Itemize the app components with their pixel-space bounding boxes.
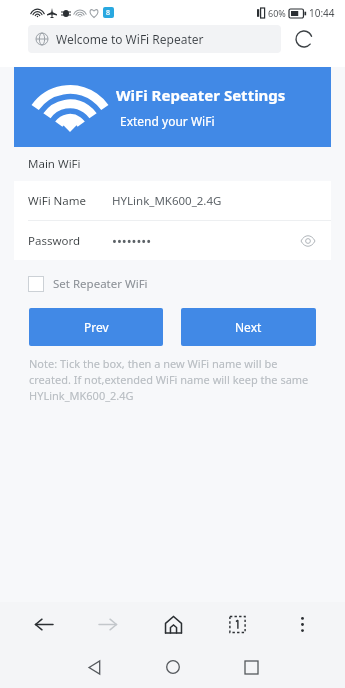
- staticText: ••••••••: [112, 232, 299, 250]
- staticText: WiFi Repeater Settings: [116, 85, 286, 105]
- button[interactable]: Back: [78, 651, 110, 683]
- staticText: Next: [235, 319, 262, 335]
- staticText: 10:44: [309, 6, 335, 20]
- staticText: Set Repeater WiFi: [53, 276, 148, 292]
- button[interactable]: Prev: [29, 308, 163, 346]
- button[interactable]: More options: [285, 607, 319, 641]
- button[interactable]: Set Repeater WiFi: [14, 274, 331, 294]
- button[interactable]: Home: [157, 651, 189, 683]
- button[interactable]: Welcome to WiFi Repeater: [28, 25, 281, 53]
- staticText: Note: Tick the box, then a new WiFi name…: [29, 356, 321, 403]
- staticText: Main WiFi: [28, 156, 81, 172]
- button[interactable]: Show password: [299, 232, 317, 250]
- button[interactable]: Stop loading: [291, 26, 317, 52]
- button[interactable]: Home: [156, 607, 190, 641]
- button[interactable]: Password: [14, 221, 331, 260]
- staticText: HYLink_MK600_2.4G: [112, 193, 317, 209]
- staticText: Extend your WiFi: [120, 113, 215, 129]
- staticText: Welcome to WiFi Repeater: [56, 31, 204, 47]
- staticText: 8: [106, 8, 111, 18]
- button[interactable]: Next: [181, 308, 316, 346]
- staticText: Prev: [84, 319, 109, 335]
- button[interactable]: WiFi Name: [14, 181, 331, 220]
- button[interactable]: Tabs: [220, 607, 254, 641]
- button[interactable]: Forward: [91, 607, 125, 641]
- staticText: 60%: [268, 7, 286, 19]
- staticText: WiFi Name: [28, 193, 112, 209]
- button[interactable]: Recent apps: [235, 651, 267, 683]
- button[interactable]: Back: [26, 607, 60, 641]
- staticText: Password: [28, 233, 112, 249]
